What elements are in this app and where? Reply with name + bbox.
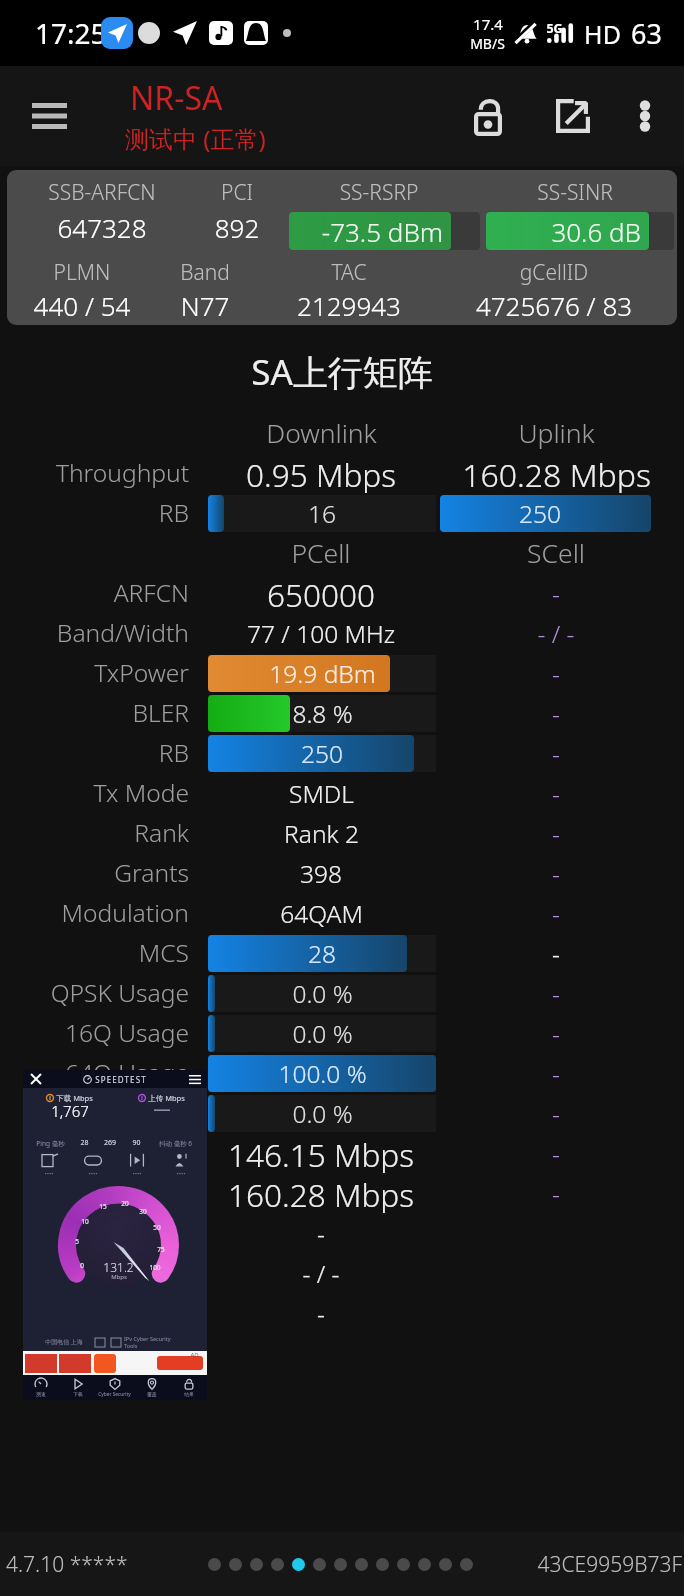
staticText: BLER: [132, 696, 189, 730]
staticText: 256Q Usage: [50, 1096, 189, 1130]
staticText: 30: [139, 1207, 147, 1216]
staticText: -: [552, 697, 560, 730]
staticText: Band: [145, 258, 265, 287]
staticText: 8.8 %: [292, 697, 353, 730]
staticText: - / -: [302, 1257, 340, 1290]
staticText: 160.28 Mbps: [228, 1173, 414, 1213]
staticText: SSB-ARFCN: [12, 178, 192, 207]
staticText: ••••: [176, 1170, 186, 1178]
staticText: 43CE9959B73F: [537, 1550, 682, 1579]
button[interactable]: Unlock: [452, 80, 524, 152]
staticText: -: [552, 657, 560, 690]
staticText: PCI: [192, 178, 282, 207]
staticText: 250: [519, 497, 561, 530]
staticText: QPSK Usage: [50, 976, 189, 1010]
staticText: -73.5 dBm: [321, 214, 443, 249]
staticText: 17.4: [473, 14, 503, 34]
staticText: 250: [301, 737, 343, 770]
staticText: MCS: [138, 936, 189, 970]
staticText: -: [552, 817, 560, 850]
staticText: TAC: [269, 258, 429, 287]
staticText: 抖动 毫秒 6: [148, 1139, 203, 1148]
staticText: 4.7.10 *****: [6, 1550, 128, 1579]
staticText: ••••: [88, 1170, 98, 1178]
staticText: -: [317, 1297, 325, 1330]
button[interactable]: 下载: [59, 1375, 96, 1400]
staticText: NR-SA: [130, 76, 223, 120]
staticText: 64Q Usage: [64, 1056, 189, 1090]
staticText: -: [552, 857, 560, 890]
staticText: -: [552, 897, 560, 930]
staticText: 0.0 %: [292, 1017, 353, 1050]
staticText: -: [552, 777, 560, 810]
staticText: 650000: [267, 573, 375, 613]
staticText: -: [552, 577, 560, 610]
button[interactable]: Cyber Security: [96, 1375, 133, 1400]
staticText: PLMN: [7, 258, 157, 287]
staticText: 440 / 54: [7, 288, 157, 323]
staticText: 160.28 Mbps: [462, 453, 651, 493]
staticText: SCell: [527, 535, 585, 571]
staticText: TxPower: [94, 656, 189, 690]
staticText: 77 / 100 MHz: [247, 617, 395, 650]
staticText: Rank 2: [284, 817, 359, 850]
staticText: -: [552, 737, 560, 770]
staticText: 20: [121, 1199, 129, 1208]
staticText: SS-RSRP: [289, 178, 469, 207]
button[interactable]: Close Speedtest: [27, 1070, 45, 1088]
staticText: 结果: [184, 1391, 194, 1397]
staticText: RB: [158, 736, 189, 770]
staticText: 16Q Usage: [64, 1016, 189, 1050]
staticText: SA上行矩阵: [0, 348, 684, 396]
staticText: -: [552, 937, 560, 970]
button[interactable]: 覆盖: [133, 1375, 170, 1400]
staticText: 131.2: [103, 1259, 134, 1275]
staticText: 63: [631, 15, 662, 52]
staticText: PCell: [291, 535, 351, 571]
staticText: -: [552, 1137, 560, 1170]
staticText: 测试中 (正常): [125, 122, 266, 155]
staticText: 0.0 %: [292, 977, 353, 1010]
button[interactable]: 结果: [170, 1375, 207, 1400]
staticText: 146.15 Mbps: [228, 1133, 414, 1173]
staticText: Mbps: [111, 1273, 127, 1281]
staticText: 15: [99, 1202, 107, 1211]
staticText: -: [552, 1177, 560, 1210]
staticText: 19.9 dBm: [269, 657, 376, 690]
staticText: Throughput: [55, 456, 189, 490]
button[interactable]: More options: [615, 86, 675, 146]
staticText: 269: [95, 1138, 125, 1148]
staticText: SS-SINR: [485, 178, 665, 207]
staticText: 下载 Mbps: [56, 1093, 93, 1103]
staticText: 4725676 / 83: [444, 288, 664, 323]
button[interactable]: 测速: [23, 1375, 59, 1400]
staticText: -: [317, 1217, 325, 1250]
staticText: IPv Cyber Security Tools: [124, 1335, 197, 1349]
staticText: Uplink: [518, 415, 595, 451]
staticText: 0: [80, 1261, 84, 1270]
staticText: HD: [584, 17, 621, 51]
staticText: 647328: [12, 210, 192, 245]
staticText: 64QAM: [280, 897, 363, 930]
button[interactable]: Navigation menu: [14, 81, 84, 151]
staticText: 0.95 Mbps: [246, 453, 396, 493]
staticText: 5G: [546, 20, 563, 37]
button[interactable]: Speedtest menu: [186, 1070, 204, 1088]
staticText: 覆盖: [147, 1391, 157, 1397]
staticText: -: [552, 977, 560, 1010]
staticText: SMDL: [289, 777, 354, 810]
staticText: -: [552, 1017, 560, 1050]
staticText: Downlink: [266, 415, 377, 451]
staticText: 5: [75, 1237, 79, 1246]
staticText: Modulation: [61, 896, 189, 930]
staticText: 28: [74, 1138, 95, 1148]
staticText: 28: [308, 937, 336, 970]
staticText: 中国电信 上海: [33, 1338, 95, 1346]
staticText: 上传 Mbps: [148, 1093, 185, 1103]
staticText: 2129943: [269, 288, 429, 323]
button[interactable]: Open externally: [537, 80, 609, 152]
staticText: AD: [190, 1351, 199, 1359]
staticText: Grants: [114, 856, 189, 890]
staticText: ••••: [132, 1170, 142, 1178]
staticText: ARFCN: [113, 576, 189, 610]
